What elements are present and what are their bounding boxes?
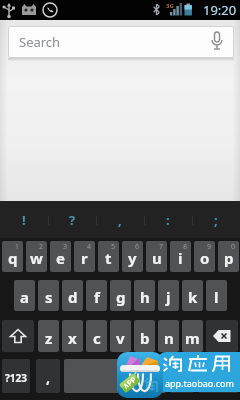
button[interactable]: ?123: [2, 359, 30, 393]
staticText: d: [68, 287, 78, 307]
staticText: s: [45, 287, 53, 307]
staticText: ,: [46, 368, 50, 387]
button[interactable]: p: [218, 241, 239, 272]
button[interactable]: u: [146, 241, 167, 272]
button[interactable]: app.taobao.com: [158, 352, 240, 392]
staticText: y: [128, 248, 137, 268]
staticText: u: [152, 248, 162, 268]
staticText: t: [105, 248, 112, 268]
staticText: z: [45, 328, 53, 348]
staticText: g: [116, 287, 126, 307]
button[interactable]: z: [38, 320, 59, 352]
staticText: 19:20: [203, 1, 237, 19]
staticText: ;: [214, 211, 218, 229]
staticText: l: [214, 287, 219, 307]
button[interactable]: e: [50, 241, 71, 272]
button[interactable]: ,: [36, 359, 60, 393]
staticText: v: [116, 328, 125, 348]
staticText: k: [188, 287, 198, 307]
staticText: q: [8, 248, 18, 268]
staticText: 1: [15, 242, 20, 252]
button[interactable]: :: [144, 202, 192, 238]
button[interactable]: Search: [8, 26, 234, 58]
button[interactable]: r: [74, 241, 95, 272]
button[interactable]: ;: [192, 202, 240, 238]
button[interactable]: j: [158, 280, 179, 311]
button[interactable]: n: [158, 320, 179, 352]
button[interactable]: w: [26, 241, 47, 272]
button[interactable]: y: [122, 241, 143, 272]
staticText: x: [68, 328, 77, 348]
button[interactable]: c: [86, 320, 107, 352]
button[interactable]: s: [38, 280, 59, 311]
button[interactable]: d: [62, 280, 83, 311]
staticText: 3: [63, 242, 68, 252]
staticText: :: [166, 211, 170, 229]
button[interactable]: o: [194, 241, 215, 272]
button[interactable]: g: [110, 280, 131, 311]
staticText: 9: [207, 242, 212, 252]
staticText: Search: [19, 33, 61, 51]
staticText: b: [140, 328, 150, 348]
staticText: i: [178, 248, 183, 268]
staticText: h: [140, 287, 150, 307]
button[interactable]: [206, 320, 238, 352]
button[interactable]: ?: [48, 202, 96, 238]
button[interactable]: h: [134, 280, 155, 311]
button[interactable]: t: [98, 241, 119, 272]
button[interactable]: .: [170, 359, 194, 393]
button[interactable]: q: [2, 241, 23, 272]
staticText: e: [56, 248, 65, 268]
staticText: ?: [69, 211, 76, 229]
staticText: w: [30, 248, 43, 268]
button[interactable]: [198, 359, 238, 393]
button[interactable]: [64, 359, 166, 393]
staticText: app.taobao.com: [165, 377, 234, 389]
staticText: !: [22, 211, 26, 229]
staticText: 8: [183, 242, 188, 252]
staticText: .: [180, 368, 184, 387]
staticText: c: [93, 328, 101, 348]
staticText: f: [94, 287, 100, 307]
staticText: n: [164, 328, 174, 348]
staticText: 0: [231, 242, 236, 252]
staticText: 6: [135, 242, 140, 252]
button[interactable]: a: [14, 280, 35, 311]
button[interactable]: !: [0, 202, 48, 238]
staticText: 7: [159, 242, 164, 252]
button[interactable]: ,: [96, 202, 144, 238]
button[interactable]: b: [134, 320, 155, 352]
staticText: p: [224, 248, 234, 268]
button[interactable]: i: [170, 241, 191, 272]
staticText: j: [166, 287, 171, 307]
button[interactable]: [2, 320, 34, 352]
staticText: 2: [39, 242, 44, 252]
staticText: 4: [87, 242, 92, 252]
staticText: a: [20, 287, 29, 307]
staticText: r: [81, 248, 88, 268]
button[interactable]: m: [182, 320, 203, 352]
staticText: 5: [111, 242, 116, 252]
button[interactable]: [117, 352, 163, 398]
button[interactable]: l: [206, 280, 227, 311]
button[interactable]: v: [110, 320, 131, 352]
staticText: ,: [118, 211, 122, 229]
button[interactable]: x: [62, 320, 83, 352]
button[interactable]: k: [182, 280, 203, 311]
staticText: 3G: [166, 2, 174, 10]
staticText: m: [185, 328, 200, 348]
staticText: o: [200, 248, 210, 268]
staticText: ?123: [5, 371, 27, 385]
button[interactable]: f: [86, 280, 107, 311]
